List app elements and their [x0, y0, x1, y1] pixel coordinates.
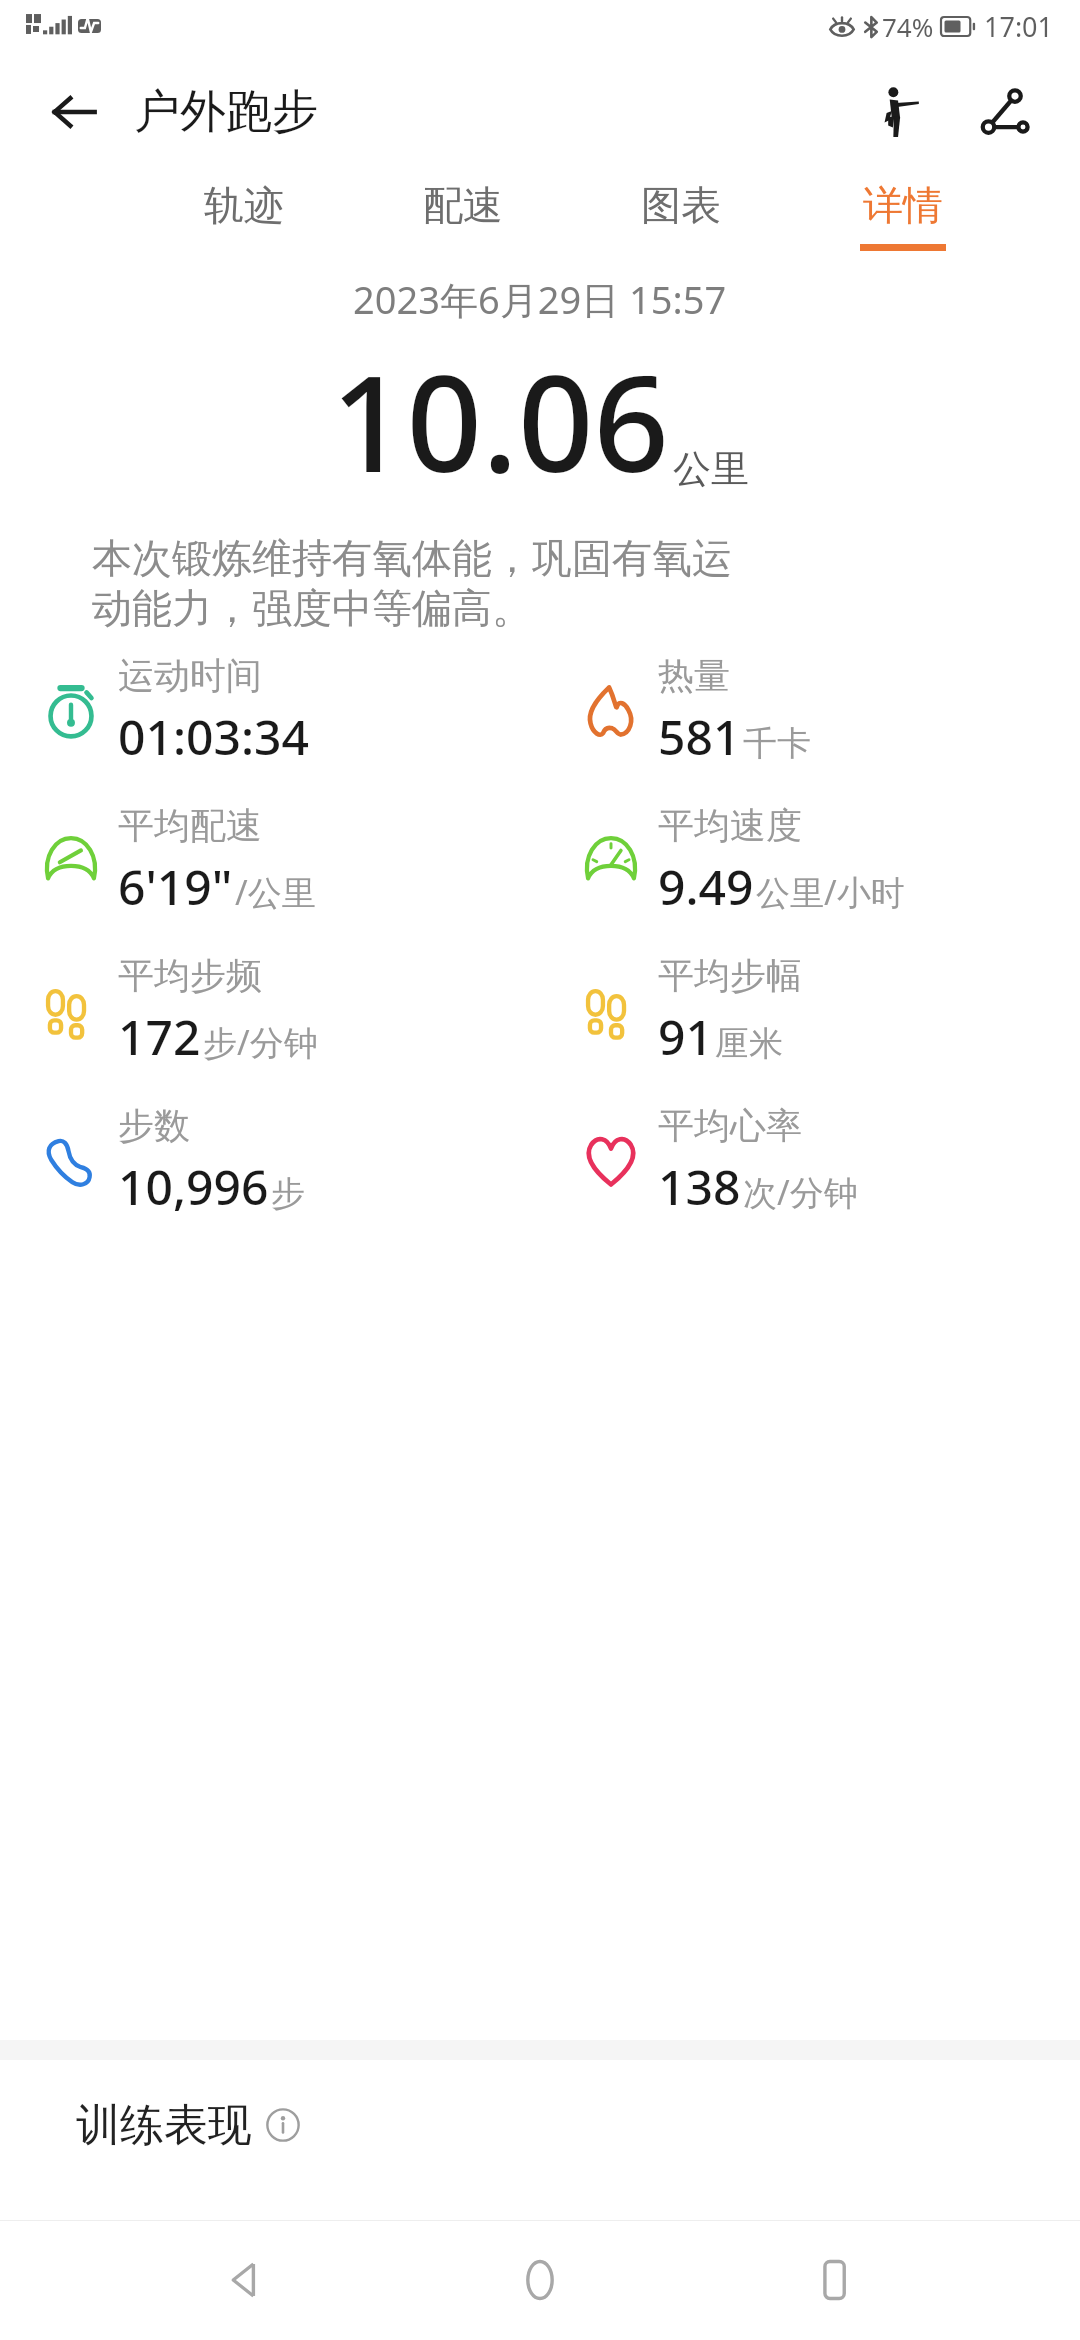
staticText: 轨迹 — [204, 180, 284, 230]
staticText: 千卡 — [743, 722, 811, 765]
button[interactable]: Recents — [785, 2230, 885, 2330]
staticText: 17:01 — [984, 8, 1054, 45]
button[interactable]: Back — [195, 2230, 295, 2330]
button[interactable]: Share — [968, 75, 1042, 149]
button[interactable]: 步数 — [0, 1103, 540, 1219]
button[interactable]: 平均步频 — [0, 953, 540, 1069]
staticText: 6'19" — [118, 854, 233, 919]
staticText: 01:03:34 — [118, 704, 309, 769]
staticText: 公里/小时 — [756, 869, 905, 915]
staticText: 2023年6月29日 15:57 — [353, 273, 727, 325]
staticText: 公里 — [673, 445, 749, 493]
staticText: 581 — [658, 704, 741, 769]
staticText: 动能力，强度中等偏高。 — [92, 583, 532, 633]
button[interactable]: Back — [42, 80, 106, 144]
staticText: 步数 — [118, 1103, 190, 1148]
button[interactable]: 训练表现 — [0, 2060, 1080, 2190]
staticText: /公里 — [235, 869, 316, 915]
button[interactable]: 轨迹 — [200, 180, 288, 251]
staticText: 平均步频 — [118, 953, 262, 998]
staticText: 10,996 — [118, 1154, 269, 1219]
button[interactable]: 平均心率 — [540, 1103, 1080, 1219]
staticText: 图表 — [641, 180, 721, 230]
button[interactable]: 运动时间 — [0, 653, 540, 769]
staticText: 9.49 — [658, 854, 754, 919]
staticText: 平均速度 — [658, 803, 802, 848]
staticText: 172 — [118, 1004, 201, 1069]
staticText: 运动时间 — [118, 653, 262, 698]
staticText: 本次锻炼维持有氧体能，巩固有氧运 — [92, 533, 732, 583]
staticText: 平均配速 — [118, 803, 262, 848]
button[interactable]: 详情 — [856, 180, 950, 251]
button[interactable]: 平均速度 — [540, 803, 1080, 919]
staticText: 配速 — [423, 180, 503, 230]
staticText: 步/分钟 — [203, 1019, 318, 1065]
staticText: 91 — [658, 1004, 713, 1069]
staticText: 步 — [271, 1172, 305, 1215]
staticText: 厘米 — [715, 1022, 783, 1065]
button[interactable]: 配速 — [419, 180, 507, 251]
staticText: 74% — [882, 9, 934, 44]
staticText: 热量 — [658, 653, 730, 698]
staticText: 次/分钟 — [743, 1169, 858, 1215]
button[interactable]: 平均配速 — [0, 803, 540, 919]
staticText: 138 — [658, 1154, 741, 1219]
staticText: 训练表现 — [76, 2098, 252, 2153]
button[interactable]: 热量 — [540, 653, 1080, 769]
staticText: 详情 — [863, 180, 943, 230]
button[interactable]: 平均步幅 — [540, 953, 1080, 1069]
staticText: 户外跑步 — [134, 83, 318, 141]
staticText: 平均心率 — [658, 1103, 802, 1148]
button[interactable]: Workout type — [860, 75, 934, 149]
button[interactable]: 图表 — [637, 180, 725, 251]
staticText: 10.06 — [331, 331, 669, 511]
staticText: 平均步幅 — [658, 953, 802, 998]
button[interactable]: Home — [490, 2230, 590, 2330]
